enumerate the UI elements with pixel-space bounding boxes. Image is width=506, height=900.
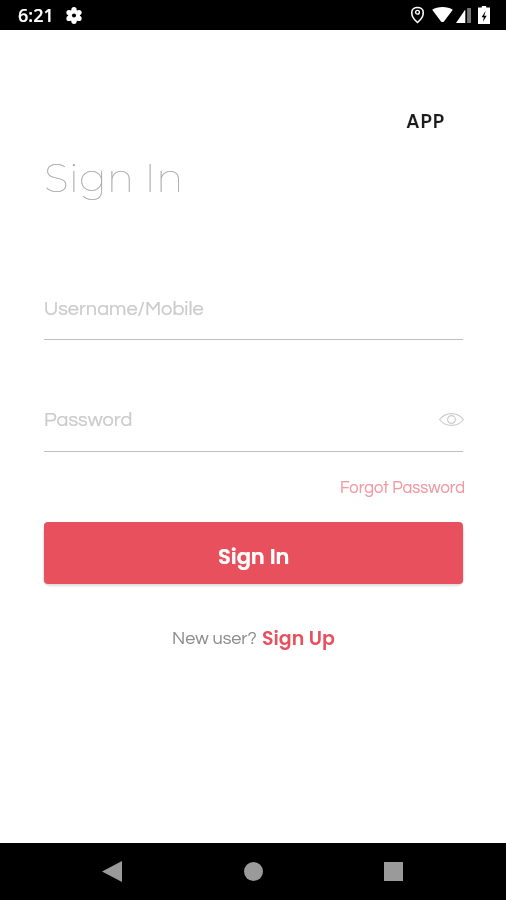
- staticText: Sign In: [44, 152, 184, 202]
- button[interactable]: Sign Up: [262, 625, 335, 651]
- staticText: Sign Up: [262, 625, 335, 651]
- staticText: Username/Mobile: [44, 299, 204, 320]
- button[interactable]: APP: [332, 106, 446, 136]
- staticText: Sign In: [218, 542, 290, 571]
- button[interactable]: Show password: [431, 398, 471, 440]
- button[interactable]: Back: [74, 843, 150, 900]
- staticText: APP: [406, 108, 446, 135]
- button[interactable]: Sign In: [44, 522, 463, 584]
- staticText: 6:21: [18, 3, 54, 28]
- staticText: New user?: [172, 629, 257, 648]
- button[interactable]: Forgot Password: [282, 474, 466, 500]
- button[interactable]: Recent apps: [355, 843, 431, 900]
- button[interactable]: Home: [215, 843, 291, 900]
- staticText: Forgot Password: [340, 479, 466, 496]
- staticText: Password: [44, 410, 133, 431]
